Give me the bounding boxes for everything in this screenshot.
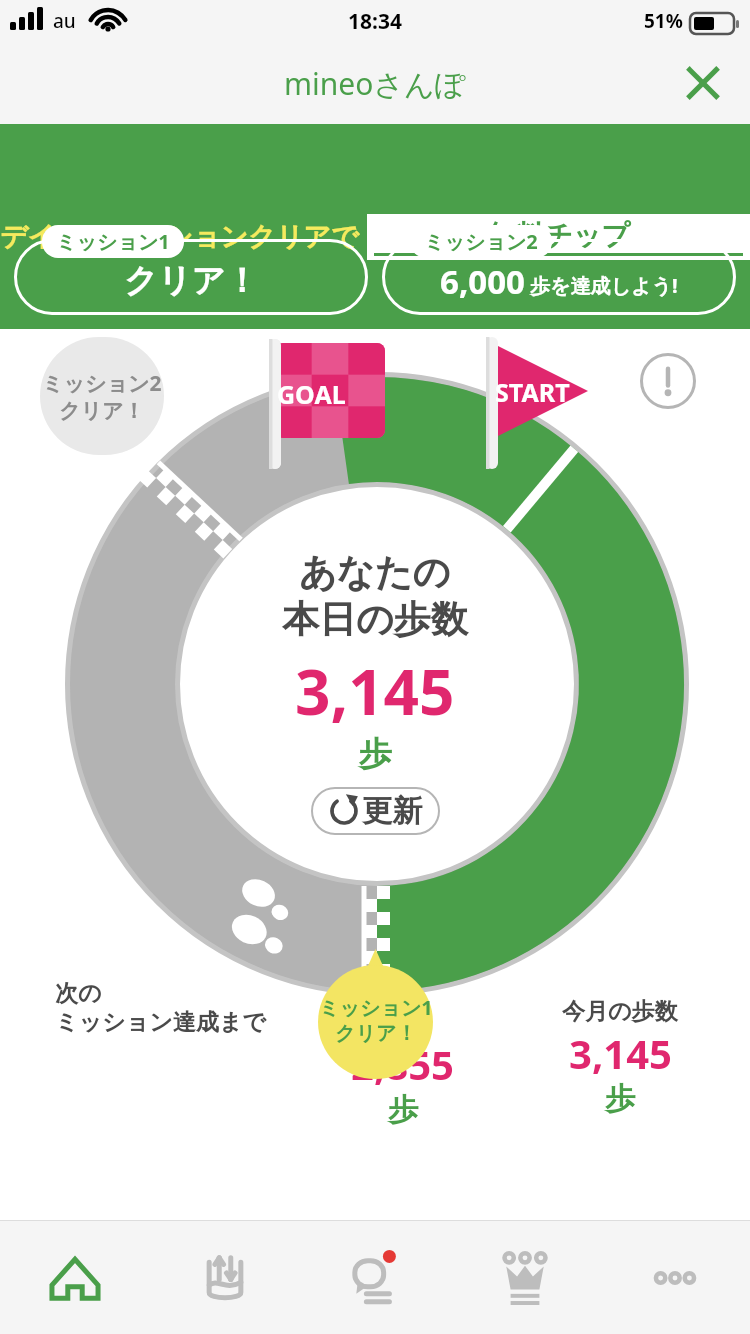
staticText: ミッション1 bbox=[56, 228, 170, 255]
staticText: あなたの bbox=[299, 549, 451, 596]
staticText: 今月の歩数 bbox=[562, 997, 678, 1026]
staticText: GOAL bbox=[277, 377, 346, 411]
staticText: 歩を達成しよう! bbox=[530, 272, 678, 299]
staticText: ミッション2 bbox=[42, 369, 162, 398]
staticText: 3,145 bbox=[569, 1026, 672, 1080]
button[interactable]: 更新 bbox=[311, 787, 440, 835]
button[interactable]: More bbox=[600, 1221, 750, 1334]
staticText: 更新 bbox=[362, 792, 422, 830]
button[interactable]: 無料チップ bbox=[374, 218, 743, 256]
button[interactable]: Messages bbox=[300, 1221, 450, 1334]
staticText: 次の bbox=[55, 979, 102, 1008]
staticText: クリア！ bbox=[59, 398, 145, 424]
staticText: クリア！ bbox=[335, 1021, 417, 1046]
staticText: au bbox=[53, 8, 76, 34]
staticText: ミッション2 bbox=[424, 228, 538, 255]
staticText: 3,145 bbox=[295, 649, 455, 733]
staticText: 歩 bbox=[359, 733, 392, 775]
staticText: 歩 bbox=[605, 1080, 635, 1118]
button[interactable]: 6,000 bbox=[382, 225, 736, 315]
button[interactable]: クリア！ bbox=[14, 225, 368, 315]
button[interactable]: Home bbox=[0, 1221, 150, 1334]
staticText: 2,855 bbox=[351, 1037, 454, 1091]
staticText: 18:34 bbox=[348, 7, 402, 36]
staticText: 51% bbox=[644, 8, 683, 34]
staticText: 6,000 bbox=[440, 259, 525, 304]
staticText: クリア！ bbox=[124, 260, 259, 302]
button[interactable]: Info bbox=[640, 353, 696, 409]
staticText: ミッション達成まで bbox=[55, 1008, 266, 1037]
staticText: ミッション1 bbox=[319, 994, 433, 1021]
staticText: START bbox=[495, 375, 570, 409]
button[interactable]: Close bbox=[674, 54, 732, 112]
button[interactable]: Ranking bbox=[450, 1221, 600, 1334]
staticText: 無料チップ bbox=[488, 218, 630, 253]
staticText: mineoさんぽ bbox=[284, 63, 466, 104]
staticText: 歩 bbox=[388, 1091, 418, 1129]
staticText: 本日の歩数 bbox=[282, 596, 468, 643]
button[interactable]: Data bbox=[150, 1221, 300, 1334]
staticText: デイリーミッションクリアで bbox=[0, 220, 359, 254]
